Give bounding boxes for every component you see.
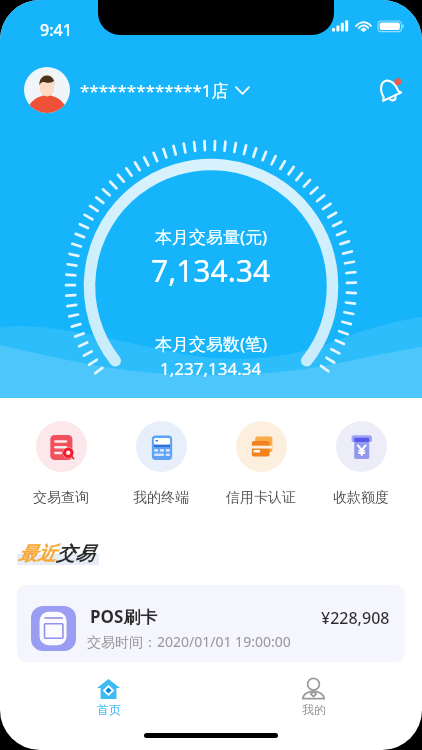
staticText: ¥228,908 xyxy=(321,607,390,629)
staticText: 7,134.34 xyxy=(151,250,271,291)
staticText: 本月交易量(元) xyxy=(155,225,268,248)
staticText: 我的 xyxy=(302,702,326,717)
staticText: 我的终端 xyxy=(133,489,189,507)
staticText: 本月交易数(笔) xyxy=(155,332,268,355)
button[interactable]: 信用卡认证 xyxy=(211,421,311,507)
button[interactable]: 首页 xyxy=(68,672,149,728)
button[interactable]: POS刷卡 xyxy=(17,585,405,662)
staticText: 9:41 xyxy=(40,19,72,41)
button[interactable]: Profile xyxy=(24,67,70,113)
button[interactable]: 我的 xyxy=(273,672,354,728)
staticText: 1,237,134.34 xyxy=(160,357,262,380)
button[interactable]: *************1店 xyxy=(80,76,249,104)
button[interactable]: 收款额度 xyxy=(311,421,411,507)
staticText: 交易 xyxy=(56,542,94,566)
button[interactable]: 我的终端 xyxy=(111,421,211,507)
staticText: 信用卡认证 xyxy=(226,489,296,507)
staticText: 交易时间：2020/01/01 19:00:00 xyxy=(87,632,291,651)
staticText: POS刷卡 xyxy=(90,605,158,628)
staticText: 首页 xyxy=(97,702,121,717)
button[interactable]: 交易查询 xyxy=(11,421,111,507)
staticText: *************1店 xyxy=(80,79,229,102)
staticText: 收款额度 xyxy=(333,489,389,507)
button[interactable]: Notifications xyxy=(367,68,411,112)
staticText: 交易查询 xyxy=(33,489,89,507)
staticText: 最近 xyxy=(18,542,56,566)
